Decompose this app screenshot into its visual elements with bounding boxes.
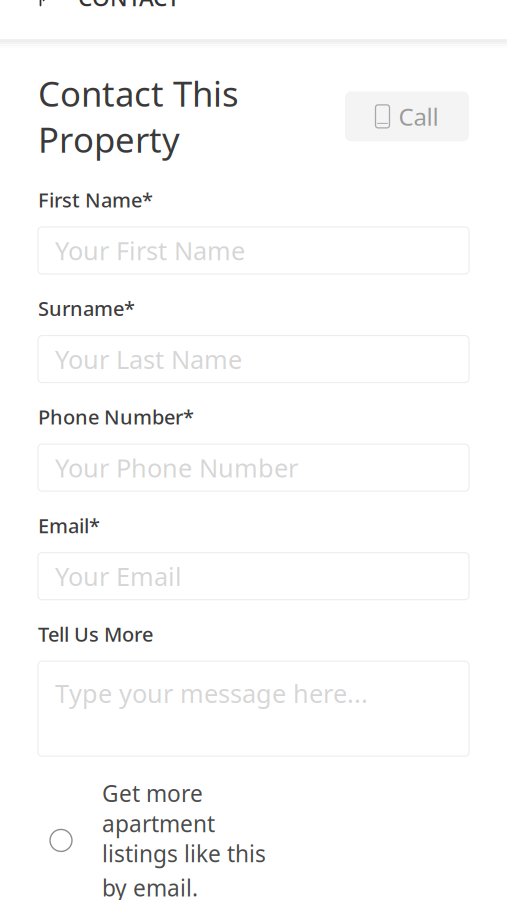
staticText: Call — [398, 100, 438, 132]
staticText: Get more apartment listings like this — [102, 778, 266, 868]
staticText: Phone Number* — [38, 404, 194, 430]
staticText: Surname* — [38, 295, 135, 322]
staticText: Type your message here... — [55, 676, 368, 710]
staticText: First Name* — [38, 186, 153, 213]
staticText: Email* — [38, 512, 100, 539]
staticText: CONTACT — [78, 0, 180, 12]
button[interactable]: Get more apartment listings like this — [38, 778, 469, 900]
staticText: Your Email — [55, 559, 182, 593]
staticText: Contact This Property — [38, 70, 239, 162]
staticText: Tell Us More — [38, 621, 153, 647]
staticText: Your Phone Number — [55, 451, 298, 484]
staticText: Your Last Name — [55, 342, 242, 376]
button[interactable]: Back to Contact — [0, 0, 194, 24]
button[interactable]: Call — [345, 91, 469, 141]
staticText: Your First Name — [55, 234, 245, 267]
staticText: by email. — [102, 872, 198, 900]
